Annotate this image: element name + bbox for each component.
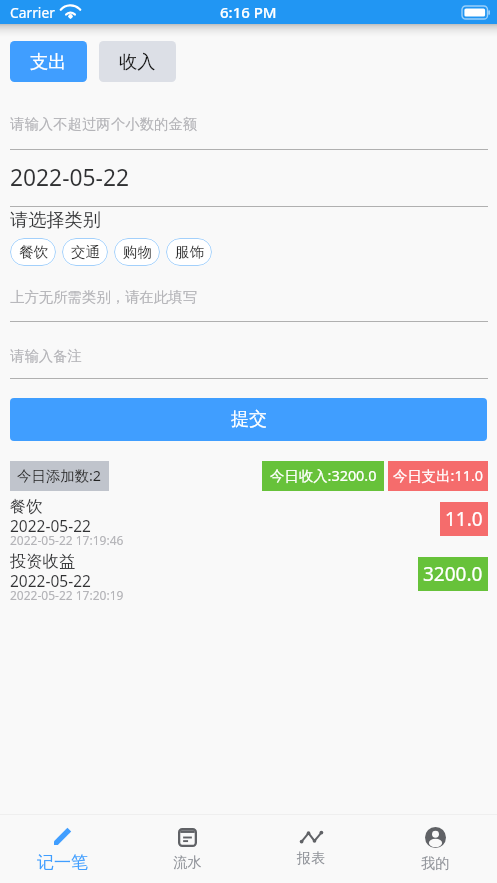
button[interactable]: 记一笔 (0, 815, 125, 883)
staticText: 2022-05-22 (10, 162, 129, 193)
staticText: 上方无所需类别，请在此填写 (10, 288, 198, 306)
staticText: Carrier (10, 3, 55, 22)
staticText: 6:16 PM (220, 2, 277, 22)
staticText: 记一笔 (37, 852, 88, 873)
staticText: 请输入不超过两个小数的金额 (10, 115, 198, 133)
staticText: 2022-05-22 17:19:46 (10, 532, 124, 548)
button[interactable]: 收入 (99, 41, 176, 82)
staticText: 请选择类别 (10, 208, 101, 231)
staticText: 投资收益 (10, 551, 76, 572)
staticText: 3200.0 (423, 561, 483, 587)
staticText: 交通 (71, 243, 100, 261)
staticText: 今日添加数:2 (17, 466, 102, 486)
staticText: 流水 (173, 853, 202, 871)
staticText: 11.0 (445, 506, 483, 532)
button[interactable]: 餐饮 (0, 495, 497, 550)
staticText: 购物 (123, 243, 152, 261)
staticText: 餐饮 (19, 243, 48, 261)
staticText: 报表 (297, 849, 326, 867)
button[interactable]: 流水 (125, 815, 249, 883)
staticText: 今日支出:11.0 (393, 466, 483, 486)
button[interactable]: 投资收益 (0, 550, 497, 605)
staticText: 2022-05-22 17:20:19 (10, 587, 124, 603)
button[interactable]: 今日支出:11.0 (388, 461, 488, 491)
staticText: 2022-05-22 (10, 570, 91, 591)
staticText: 收入 (119, 50, 156, 73)
staticText: 餐饮 (10, 496, 43, 517)
button[interactable]: 今日添加数:2 (10, 461, 109, 491)
button[interactable]: 报表 (249, 815, 373, 883)
staticText: 请输入备注 (10, 347, 82, 365)
button[interactable]: 餐饮 (10, 238, 56, 266)
staticText: 服饰 (175, 243, 204, 261)
button[interactable]: 交通 (62, 238, 108, 266)
button[interactable]: 提交 (10, 398, 487, 441)
staticText: 今日收入:3200.0 (270, 466, 377, 486)
staticText: 提交 (231, 408, 267, 431)
button[interactable]: 今日收入:3200.0 (262, 461, 384, 491)
button[interactable]: 支出 (10, 41, 87, 82)
staticText: 2022-05-22 (10, 515, 91, 536)
staticText: 支出 (30, 50, 67, 73)
button[interactable]: 购物 (114, 238, 160, 266)
staticText: 我的 (421, 854, 450, 872)
button[interactable]: 服饰 (166, 238, 212, 266)
button[interactable]: 我的 (373, 815, 497, 883)
